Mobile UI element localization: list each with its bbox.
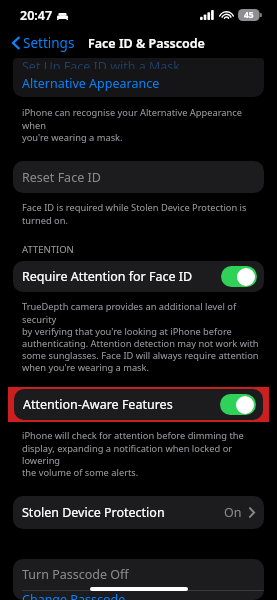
- staticText: Turn Passcode Off: [22, 566, 129, 583]
- button[interactable]: Reset Face ID: [13, 161, 264, 193]
- button[interactable]: Attention-Aware Features: [14, 389, 263, 420]
- button[interactable]: Require Attention for Face ID toggle, on: [221, 266, 257, 287]
- staticText: Face ID & Passcode: [88, 35, 205, 52]
- button[interactable]: Alternative Appearance: [13, 69, 264, 97]
- button[interactable]: Attention-Aware Features toggle, on: [220, 394, 256, 415]
- staticText: Face ID is required while Stolen Device …: [22, 201, 247, 226]
- button[interactable]: Change Passcode: [13, 591, 264, 600]
- button[interactable]: Turn Passcode Off: [13, 559, 264, 590]
- staticText: iPhone will check for attention before d…: [22, 429, 263, 478]
- staticText: Attention-Aware Features: [23, 396, 173, 413]
- button[interactable]: Stolen Device Protection: [13, 496, 264, 529]
- button[interactable]: Set Up Face ID with a Mask: [13, 58, 264, 69]
- staticText: 45: [244, 9, 254, 21]
- staticText: Alternative Appearance: [22, 75, 160, 92]
- button[interactable]: Settings: [8, 31, 79, 55]
- staticText: Reset Face ID: [22, 169, 101, 186]
- staticText: iPhone can recognise your Alternative Ap…: [22, 106, 263, 143]
- staticText: Stolen Device Protection: [22, 504, 165, 521]
- staticText: 20:47: [20, 7, 53, 24]
- staticText: TrueDepth camera provides an additional …: [22, 300, 263, 373]
- staticText: ATTENTION: [22, 243, 74, 256]
- staticText: Settings: [23, 34, 75, 52]
- staticText: Set Up Face ID with a Mask: [22, 58, 180, 69]
- staticText: Require Attention for Face ID: [22, 268, 193, 285]
- staticText: Change Passcode: [22, 591, 126, 600]
- staticText: On: [224, 504, 242, 521]
- button[interactable]: Require Attention for Face ID: [13, 261, 264, 292]
